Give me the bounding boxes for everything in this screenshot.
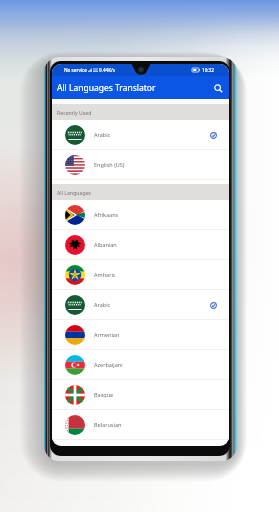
button[interactable]: Albanian — [52, 230, 229, 259]
button[interactable]: English (US) — [52, 150, 229, 179]
staticText: Albanian — [94, 241, 117, 248]
staticText: Armenian — [94, 331, 120, 338]
button[interactable]: Armenian — [52, 320, 229, 349]
staticText: No service — [64, 67, 87, 73]
button[interactable]: Belarusian — [52, 410, 229, 439]
staticText: Belarusian — [94, 421, 122, 428]
staticText: Recently Used — [57, 109, 92, 116]
staticText: Basque — [94, 391, 114, 398]
staticText: All Languages — [57, 189, 92, 196]
button[interactable]: Amharic — [52, 260, 229, 289]
staticText: English (US) — [94, 161, 125, 168]
button[interactable]: Afrikaans — [52, 200, 229, 229]
staticText: 9.44K/s — [99, 67, 116, 73]
button[interactable]: Search — [209, 79, 227, 97]
button[interactable]: Arabic — [52, 290, 229, 319]
staticText: Arabic — [94, 301, 111, 308]
button[interactable]: Arabic — [52, 120, 229, 149]
staticText: Amharic — [94, 271, 116, 278]
staticText: Azerbaijani — [94, 361, 123, 368]
button[interactable]: Azerbaijani — [52, 350, 229, 379]
staticText: All Languages Translator — [57, 82, 156, 94]
staticText: 10:32 — [202, 67, 214, 73]
staticText: Arabic — [94, 131, 111, 138]
button[interactable]: Basque — [52, 380, 229, 409]
staticText: Afrikaans — [94, 211, 119, 218]
